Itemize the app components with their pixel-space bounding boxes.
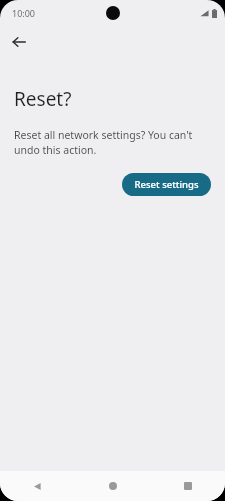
button[interactable]: Reset settings [122, 173, 211, 196]
staticText: 10:00 [12, 7, 36, 19]
button[interactable]: Back [6, 29, 32, 55]
staticText: Reset? [14, 86, 72, 112]
button[interactable]: Home [75, 471, 150, 501]
button[interactable]: Recent apps [150, 471, 225, 501]
button[interactable]: Back [0, 471, 75, 501]
staticText: Reset settings [134, 178, 199, 191]
staticText: Reset all network settings? You can't un… [14, 128, 205, 157]
